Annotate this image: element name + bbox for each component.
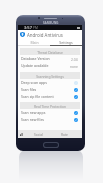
staticText: Settings — [59, 40, 73, 45]
button[interactable]: Update available — [18, 62, 82, 69]
staticText: Threat Database — [37, 50, 63, 54]
button[interactable]: Main — [18, 39, 50, 46]
staticText: Social — [34, 132, 43, 136]
staticText: Scan files — [21, 87, 37, 92]
button[interactable]: Settings — [50, 39, 82, 46]
button[interactable]: Deep scan apps — [18, 79, 82, 86]
staticText: Android Antivirus — [27, 32, 63, 38]
staticText: Main — [30, 40, 39, 45]
button[interactable]: Scan files — [18, 86, 82, 93]
button[interactable]: Social — [25, 130, 51, 138]
staticText: 2.04 — [71, 57, 78, 61]
staticText: Scan zip file content — [21, 94, 54, 99]
button[interactable]: Database Version — [18, 55, 82, 62]
staticText: Deep scan apps — [21, 80, 47, 85]
button[interactable]: Scan new apps — [18, 109, 82, 116]
staticText: Scanning Settings — [36, 74, 64, 78]
staticText: Update available — [21, 63, 49, 68]
button[interactable]: Menu — [18, 130, 25, 138]
staticText: SAMSUNG — [43, 21, 59, 25]
staticText: 3:57 — [24, 25, 32, 30]
staticText: PM — [33, 26, 38, 30]
button[interactable]: Scan zip file content — [18, 93, 82, 100]
staticText: Real Time Protection — [34, 104, 66, 108]
button[interactable]: Scan new files — [18, 116, 82, 123]
staticText: Rate — [61, 132, 68, 136]
staticText: Database Version — [21, 56, 50, 61]
staticText: Scan new apps — [21, 110, 46, 115]
staticText: Scan new files — [21, 117, 45, 122]
staticText: none — [70, 64, 78, 68]
button[interactable]: Rate — [51, 130, 77, 138]
